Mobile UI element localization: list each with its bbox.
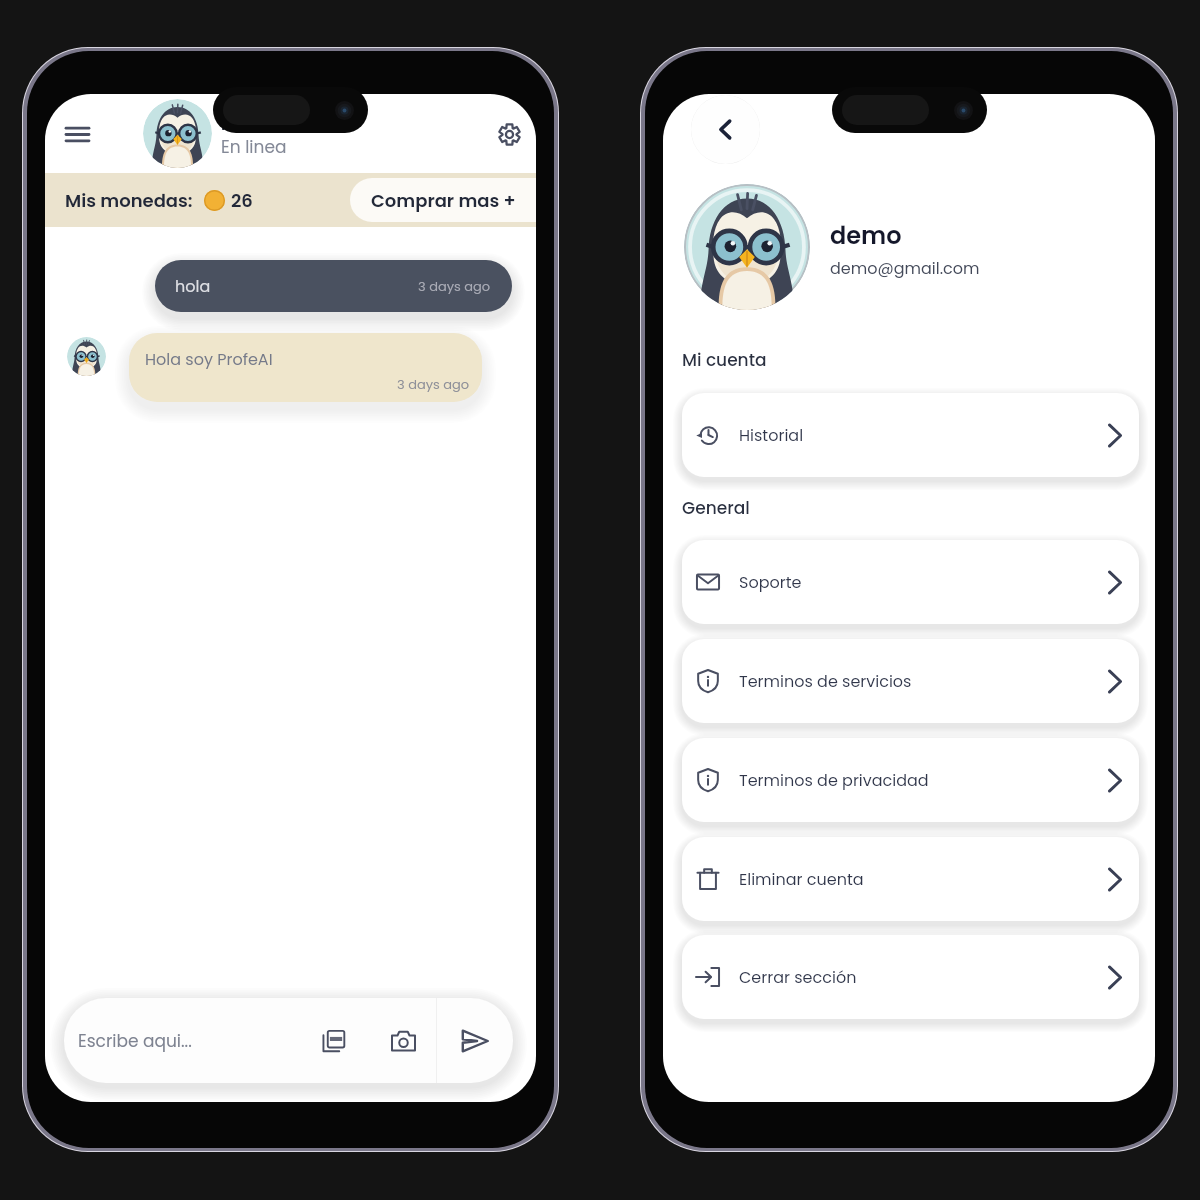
staticText: Comprar mas + xyxy=(371,188,516,213)
staticText: demo xyxy=(830,219,902,253)
button[interactable]: Historial xyxy=(682,393,1139,477)
button[interactable]: Camera xyxy=(381,1019,425,1063)
staticText: demo@gmail.com xyxy=(830,257,980,279)
staticText: Cerrar sección xyxy=(739,966,857,988)
button[interactable]: Send xyxy=(453,1019,497,1063)
staticText: Terminos de privacidad xyxy=(739,769,929,791)
staticText: Mis monedas: xyxy=(65,188,193,213)
staticText: Eliminar cuenta xyxy=(739,868,864,890)
staticText: Soporte xyxy=(739,571,802,593)
button[interactable]: Menu xyxy=(55,112,99,156)
staticText: En linea xyxy=(221,135,287,159)
button[interactable]: Attach PDF xyxy=(312,1019,356,1063)
staticText: hola xyxy=(175,275,211,297)
staticText: Escribe aqui... xyxy=(78,1029,192,1053)
button[interactable]: Terminos de privacidad xyxy=(682,738,1139,822)
staticText: 26 xyxy=(231,188,253,213)
staticText: Hola soy ProfeAI xyxy=(145,348,273,370)
button[interactable]: Soporte xyxy=(682,540,1139,624)
staticText: 3 days ago xyxy=(418,277,491,295)
button[interactable]: Terminos de servicios xyxy=(682,639,1139,723)
button[interactable]: Cerrar sección xyxy=(682,935,1139,1019)
staticText: 3 days ago xyxy=(397,375,470,393)
staticText: General xyxy=(682,496,750,520)
button[interactable]: Comprar mas + xyxy=(350,178,536,222)
staticText: ProfeAI xyxy=(221,113,279,135)
button[interactable]: Eliminar cuenta xyxy=(682,837,1139,921)
button[interactable]: Back xyxy=(691,95,760,164)
button[interactable]: Settings xyxy=(487,112,531,156)
staticText: Terminos de servicios xyxy=(739,670,912,692)
staticText: Historial xyxy=(739,424,804,446)
staticText: Mi cuenta xyxy=(682,348,767,372)
